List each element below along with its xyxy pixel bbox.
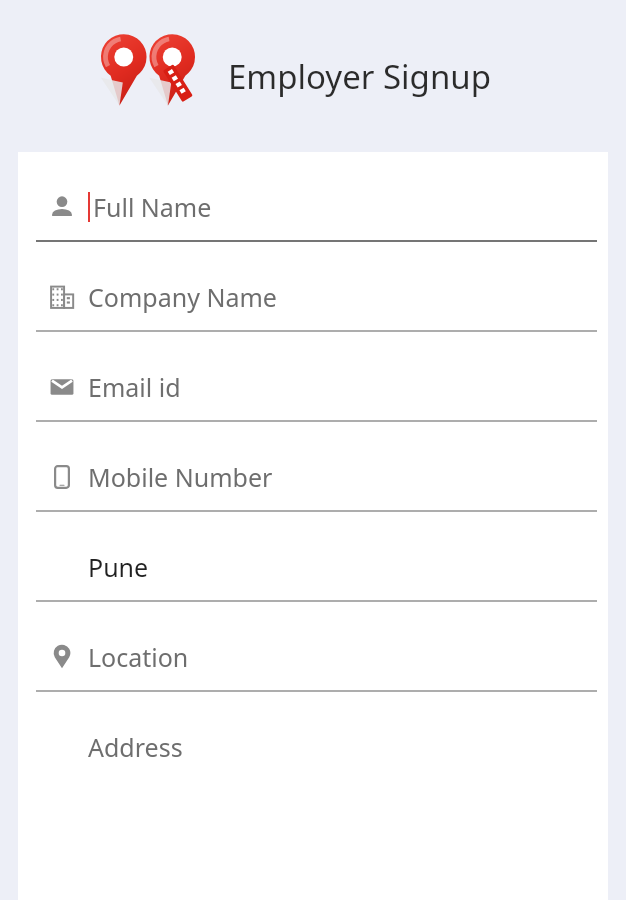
- staticText: Employer Signup: [228, 54, 491, 99]
- staticText: Mobile Number: [88, 460, 273, 494]
- button[interactable]: Full Name: [18, 152, 608, 242]
- button[interactable]: Address: [18, 692, 608, 782]
- button[interactable]: Company Name: [18, 242, 608, 332]
- button[interactable]: Pune: [18, 512, 608, 602]
- staticText: Full Name: [93, 190, 212, 224]
- button[interactable]: Mobile Number: [18, 422, 608, 512]
- button[interactable]: Location: [18, 602, 608, 692]
- staticText: Pune: [88, 550, 149, 584]
- staticText: Email id: [88, 370, 181, 404]
- staticText: Address: [88, 730, 183, 764]
- staticText: Company Name: [88, 280, 277, 314]
- button[interactable]: Email id: [18, 332, 608, 422]
- staticText: Location: [88, 640, 189, 674]
